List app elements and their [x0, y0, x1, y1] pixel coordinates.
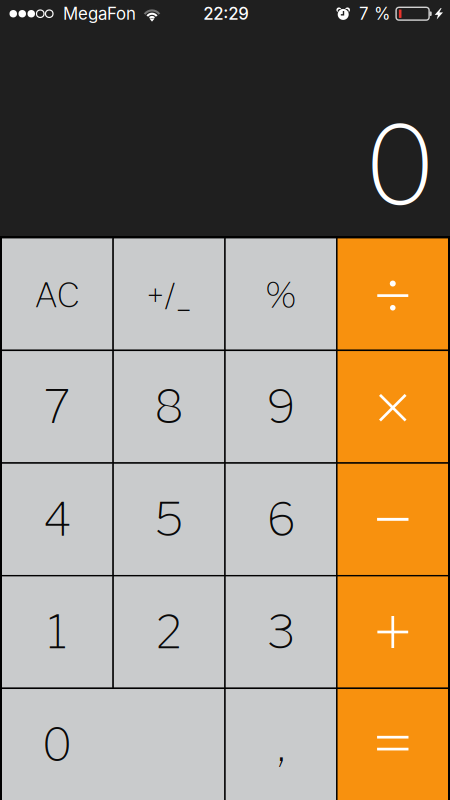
- button[interactable]: 0: [2, 689, 224, 800]
- button[interactable]: 7: [2, 351, 112, 462]
- button[interactable]: Minus: [338, 464, 448, 575]
- staticText: 7 %: [359, 4, 390, 24]
- button[interactable]: 2: [114, 576, 224, 688]
- staticText: AC: [34, 274, 80, 316]
- button[interactable]: ,: [226, 689, 336, 800]
- staticText: 8: [154, 379, 184, 434]
- staticText: 2: [156, 604, 182, 659]
- staticText: 0: [42, 717, 73, 772]
- staticText: 5: [155, 492, 184, 547]
- staticText: 6: [266, 492, 295, 547]
- button[interactable]: Divide: [338, 238, 448, 350]
- button[interactable]: +/_: [114, 238, 224, 350]
- staticText: 22:29: [203, 4, 249, 24]
- staticText: 1: [47, 604, 67, 659]
- button[interactable]: Plus: [338, 576, 448, 688]
- button[interactable]: 3: [226, 576, 336, 688]
- button[interactable]: %: [226, 238, 336, 350]
- button[interactable]: AC: [2, 238, 112, 350]
- staticText: 3: [267, 604, 295, 659]
- staticText: ,: [277, 717, 285, 772]
- button[interactable]: 4: [2, 464, 112, 575]
- staticText: +/_: [147, 276, 192, 316]
- staticText: 4: [43, 492, 71, 547]
- staticText: 7: [44, 379, 71, 434]
- button[interactable]: 5: [114, 464, 224, 575]
- button[interactable]: Equals: [338, 689, 448, 800]
- staticText: 0: [364, 101, 436, 230]
- staticText: MegaFon: [63, 4, 136, 24]
- staticText: 9: [266, 379, 295, 434]
- button[interactable]: 1: [2, 576, 112, 688]
- button[interactable]: 8: [114, 351, 224, 462]
- button[interactable]: 9: [226, 351, 336, 462]
- button[interactable]: Multiply: [338, 351, 448, 462]
- button[interactable]: 6: [226, 464, 336, 575]
- staticText: %: [265, 274, 297, 316]
